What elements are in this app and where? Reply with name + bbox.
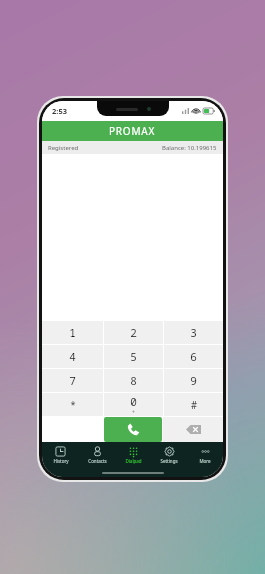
- staticText: History: [53, 458, 69, 464]
- staticText: 4: [69, 349, 76, 364]
- button[interactable]: 0: [104, 393, 163, 416]
- button[interactable]: Backspace: [163, 417, 223, 442]
- staticText: PROMAX: [109, 124, 156, 138]
- button[interactable]: 1: [42, 321, 103, 344]
- button[interactable]: #: [164, 393, 223, 416]
- staticText: 2: [130, 325, 137, 340]
- staticText: Contacts: [88, 458, 107, 464]
- button[interactable]: More: [187, 442, 223, 468]
- staticText: Dialpad: [125, 458, 142, 464]
- staticText: 8: [130, 373, 137, 388]
- button[interactable]: 7: [42, 369, 103, 392]
- staticText: 2:53: [52, 106, 67, 116]
- staticText: 9: [190, 373, 197, 388]
- button[interactable]: Dialpad: [115, 442, 151, 468]
- staticText: *: [70, 398, 76, 412]
- button[interactable]: Call: [104, 417, 162, 442]
- button[interactable]: 4: [42, 345, 103, 368]
- button[interactable]: 5: [104, 345, 163, 368]
- staticText: Registered: [48, 144, 79, 152]
- staticText: More: [199, 458, 211, 464]
- staticText: #: [191, 398, 197, 412]
- button[interactable]: 3: [164, 321, 223, 344]
- button[interactable]: 9: [164, 369, 223, 392]
- button[interactable]: 8: [104, 369, 163, 392]
- staticText: 6: [190, 349, 197, 364]
- staticText: +: [132, 409, 135, 416]
- button[interactable]: History: [42, 442, 79, 468]
- staticText: Balance: 10.199615: [162, 144, 217, 152]
- button[interactable]: Contacts: [79, 442, 115, 468]
- button[interactable]: Settings: [151, 442, 187, 468]
- staticText: 1: [69, 325, 76, 340]
- staticText: 3: [190, 325, 197, 340]
- staticText: 5: [130, 349, 137, 364]
- button[interactable]: 6: [164, 345, 223, 368]
- staticText: 0: [130, 394, 137, 409]
- button[interactable]: *: [42, 393, 103, 416]
- staticText: Settings: [160, 458, 178, 464]
- staticText: 7: [69, 373, 76, 388]
- button[interactable]: 2: [104, 321, 163, 344]
